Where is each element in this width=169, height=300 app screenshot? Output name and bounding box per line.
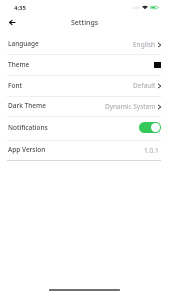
staticText: Default — [133, 81, 156, 90]
button[interactable]: Notifications toggle — [139, 122, 161, 133]
button[interactable]: Notifications — [0, 116, 169, 140]
staticText: Theme — [8, 60, 30, 69]
staticText: 1.0.1 — [144, 146, 159, 155]
staticText: Notifications — [8, 123, 48, 132]
staticText: 4:35 — [14, 4, 26, 12]
button[interactable]: Font — [0, 75, 169, 96]
button[interactable]: App Version — [0, 140, 169, 160]
staticText: Language — [8, 39, 39, 48]
staticText: Font — [8, 81, 22, 90]
button[interactable]: Back — [4, 15, 19, 30]
staticText: Dark Theme — [8, 101, 46, 110]
staticText: English — [133, 40, 156, 49]
staticText: App Version — [8, 145, 46, 154]
button[interactable]: Theme — [0, 54, 169, 75]
button[interactable]: Dark Theme — [0, 96, 169, 116]
staticText: Settings — [71, 18, 99, 28]
staticText: Dynamic System — [105, 102, 156, 111]
button[interactable]: Language — [0, 34, 169, 54]
